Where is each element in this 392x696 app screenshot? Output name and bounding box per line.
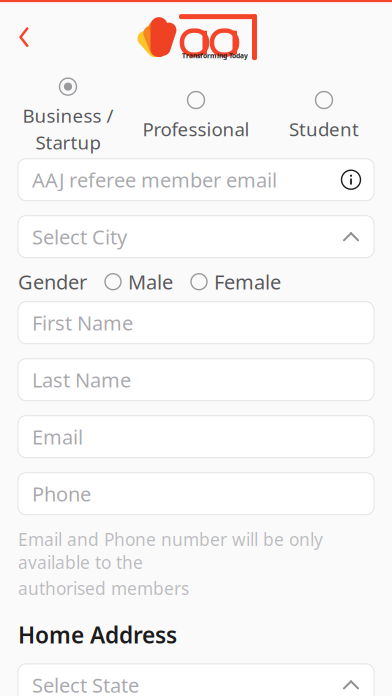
staticText: AAJ referee member email [32,166,277,193]
staticText: Email [32,423,83,450]
staticText: Last Name [32,366,131,393]
button[interactable]: Student [260,87,388,145]
staticText: Select City [32,223,127,250]
staticText: authorised members [18,577,189,600]
staticText: Female [214,268,281,295]
staticText: Phone [32,480,91,507]
staticText: First Name [32,309,133,336]
button[interactable]: Female [173,263,281,300]
staticText: Startup [35,130,100,155]
button[interactable]: Phone [18,473,374,515]
staticText: Business / [22,103,113,128]
button[interactable]: Business / [4,74,132,159]
button[interactable]: Email [18,416,374,458]
staticText: Student [289,116,359,141]
staticText: Home Address [18,620,177,650]
staticText: Carrier [35,0,89,3]
button[interactable]: First Name [18,302,374,344]
staticText: 12:46 PM [197,0,266,3]
button[interactable]: Male [87,263,173,300]
staticText: Email and Phone number will be only avai… [18,528,323,574]
staticText: Gender [18,268,87,295]
button[interactable]: Professional [132,87,260,145]
button[interactable]: Select City [18,216,374,258]
staticText: Transforming Today [182,51,248,60]
staticText: Male [128,268,173,295]
staticText: Select State [32,672,139,696]
staticText: Professional [142,116,249,141]
button[interactable]: Back [0,18,48,56]
button[interactable]: Select State [18,664,374,696]
button[interactable]: AAJ referee member email [18,159,374,201]
button[interactable]: Last Name [18,359,374,401]
